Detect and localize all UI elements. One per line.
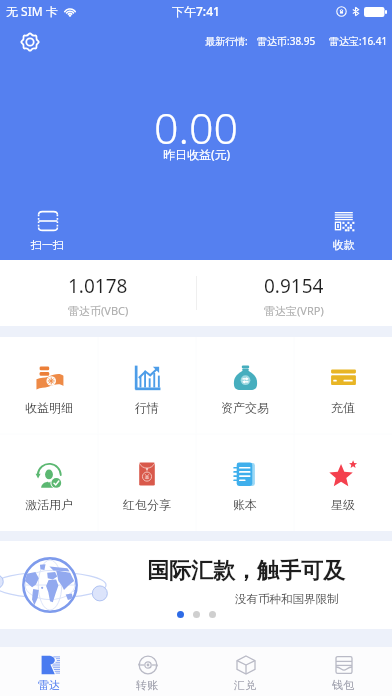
button[interactable]: 账本 bbox=[196, 434, 294, 512]
staticText: 0.00 bbox=[154, 98, 239, 157]
button[interactable]: 1.0178 bbox=[0, 260, 196, 318]
staticText: 雷达宝:16.41 bbox=[329, 34, 388, 48]
staticText: 资产交易 bbox=[221, 400, 269, 415]
button[interactable]: 收款 bbox=[333, 211, 355, 252]
staticText: 收益明细 bbox=[25, 400, 73, 415]
staticText: 雷达币(VBC) bbox=[68, 303, 129, 318]
button[interactable]: 汇兑 bbox=[196, 647, 294, 692]
staticText: 钱包 bbox=[332, 678, 354, 692]
button[interactable]: Settings bbox=[17, 29, 43, 55]
staticText: 昨日收益(元) bbox=[163, 146, 231, 162]
button[interactable]: 星级 bbox=[294, 434, 392, 512]
staticText: 汇兑 bbox=[234, 678, 256, 692]
button[interactable]: 雷达 bbox=[0, 647, 98, 692]
button[interactable]: 资产交易 bbox=[196, 337, 294, 415]
staticText: 0.9154 bbox=[264, 273, 324, 299]
staticText: 收款 bbox=[333, 238, 355, 252]
staticText: 雷达宝(VRP) bbox=[264, 303, 324, 318]
button[interactable]: 国际汇款，触手可及 bbox=[0, 541, 392, 629]
button[interactable]: 钱包 bbox=[294, 647, 392, 692]
staticText: 红包分享 bbox=[123, 497, 171, 512]
staticText: 雷达币:38.95 bbox=[257, 34, 316, 48]
staticText: 1.0178 bbox=[68, 273, 128, 299]
staticText: 无 SIM 卡 bbox=[6, 3, 58, 19]
staticText: 转账 bbox=[136, 678, 158, 692]
staticText: 账本 bbox=[233, 497, 257, 512]
staticText: 没有币种和国界限制 bbox=[235, 592, 339, 606]
staticText: 国际汇款，触手可及 bbox=[147, 557, 345, 585]
button[interactable]: 转账 bbox=[98, 647, 196, 692]
button[interactable]: 行情 bbox=[98, 337, 196, 415]
staticText: 下午7:41 bbox=[172, 3, 220, 19]
button[interactable]: 0.9154 bbox=[196, 260, 392, 318]
button[interactable]: 激活用户 bbox=[0, 434, 98, 512]
button[interactable]: 充值 bbox=[294, 337, 392, 415]
button[interactable]: 红包分享 bbox=[98, 434, 196, 512]
staticText: 扫一扫 bbox=[31, 238, 64, 252]
button[interactable]: 扫一扫 bbox=[31, 211, 64, 252]
staticText: 行情 bbox=[135, 400, 159, 415]
button[interactable]: 收益明细 bbox=[0, 337, 98, 415]
staticText: 最新行情: bbox=[205, 34, 248, 48]
staticText: 星级 bbox=[331, 497, 355, 512]
staticText: 雷达 bbox=[38, 678, 60, 692]
staticText: 激活用户 bbox=[25, 497, 73, 512]
staticText: 充值 bbox=[331, 400, 355, 415]
